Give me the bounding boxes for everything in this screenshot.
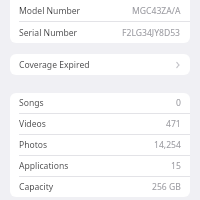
staticText: Photos bbox=[19, 139, 48, 151]
staticText: 14,254 bbox=[154, 139, 181, 151]
button[interactable]: Model Number bbox=[10, 0, 190, 21]
staticText: 0 bbox=[176, 97, 181, 109]
staticText: 471 bbox=[166, 118, 181, 130]
staticText: 256 GB bbox=[152, 181, 181, 193]
other: Open coverage details bbox=[175, 60, 181, 70]
button[interactable]: Serial Number bbox=[10, 22, 190, 43]
staticText: F2LG34JY8D53 bbox=[122, 27, 181, 39]
button[interactable]: Coverage Expired bbox=[10, 54, 190, 75]
staticText: Coverage Expired bbox=[19, 59, 90, 71]
staticText: Songs bbox=[19, 97, 44, 109]
button[interactable]: Capacity bbox=[10, 177, 190, 197]
staticText: Model Number bbox=[19, 5, 81, 17]
staticText: MGC43ZA/A bbox=[132, 5, 181, 17]
button[interactable]: Videos bbox=[10, 114, 190, 134]
button[interactable]: Applications bbox=[10, 156, 190, 176]
staticText: Serial Number bbox=[19, 27, 78, 39]
button[interactable]: Photos bbox=[10, 135, 190, 155]
staticText: Applications bbox=[19, 160, 69, 172]
button[interactable]: Songs bbox=[10, 93, 190, 113]
staticText: Capacity bbox=[19, 181, 54, 193]
staticText: Videos bbox=[19, 118, 46, 130]
staticText: 15 bbox=[171, 160, 181, 172]
